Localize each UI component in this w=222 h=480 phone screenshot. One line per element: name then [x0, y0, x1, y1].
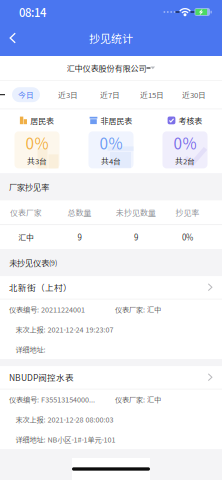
staticText: 详细地址: NB小区-1#-1单元-101 [15, 434, 115, 445]
button[interactable]: 今日 [5, 84, 47, 106]
staticText: 共4台 [101, 155, 121, 166]
button[interactable]: NBUDP阀控水表 [0, 366, 222, 449]
staticText: 未抄见仪表 [9, 257, 49, 269]
staticText: 共3台 [27, 155, 47, 166]
staticText: 9 [134, 231, 138, 243]
button[interactable]: 北新街（上村） [0, 276, 222, 359]
button[interactable]: 近3日 [47, 84, 89, 106]
staticText: 0% [99, 132, 122, 154]
staticText: 共2台 [175, 155, 195, 166]
staticText: 仪表厂家: 汇中 [115, 304, 161, 315]
staticText: 居民表 [30, 115, 54, 126]
staticText: 仪表厂家: 汇中 [115, 394, 161, 405]
staticText: 仪表编号: F35513154000... [9, 394, 95, 405]
staticText: 近30日 [182, 89, 206, 100]
staticText: 0% [173, 132, 196, 154]
button[interactable]: 近30日 [173, 84, 215, 106]
staticText: 汇中仪表股份有限公司 [66, 62, 146, 74]
staticText: 末次上报: 2021-12-28 08:00:03 [15, 414, 113, 425]
staticText: 近7日 [100, 89, 120, 100]
staticText: 近15日 [140, 89, 164, 100]
staticText: 仪表厂家 [10, 207, 42, 218]
staticText: 近3日 [58, 89, 78, 100]
staticText: 考核表 [178, 115, 202, 126]
staticText: 汇中 [18, 231, 34, 243]
staticText: 未抄见数量 [116, 207, 156, 218]
staticText: 0% [25, 132, 48, 154]
staticText: 厂家抄见率 [9, 181, 49, 193]
staticText: 详细地址: [15, 344, 45, 355]
staticText: 抄见率 [175, 207, 199, 218]
staticText: 0% [182, 231, 193, 243]
staticText: NBUDP阀控水表 [9, 371, 74, 383]
staticText: 北新街（上村） [9, 281, 72, 293]
staticText: 9 [77, 231, 81, 243]
button[interactable]: 返回 [0, 26, 24, 50]
button[interactable]: 近15日 [131, 84, 173, 106]
staticText: 仪表编号: 20211224001 [9, 304, 85, 315]
button[interactable]: 近7日 [89, 84, 131, 106]
staticText: 末次上报: 2021-12-24 19:23:07 [15, 324, 113, 335]
staticText: 08:14 [19, 4, 46, 20]
staticText: (9) [49, 258, 57, 268]
staticText: 抄见统计 [89, 30, 133, 46]
button[interactable]: 汇中仪表股份有限公司 [0, 56, 222, 80]
staticText: 今日 [18, 89, 34, 100]
staticText: 总数量 [67, 207, 91, 218]
staticText: 非居民表 [100, 115, 132, 126]
